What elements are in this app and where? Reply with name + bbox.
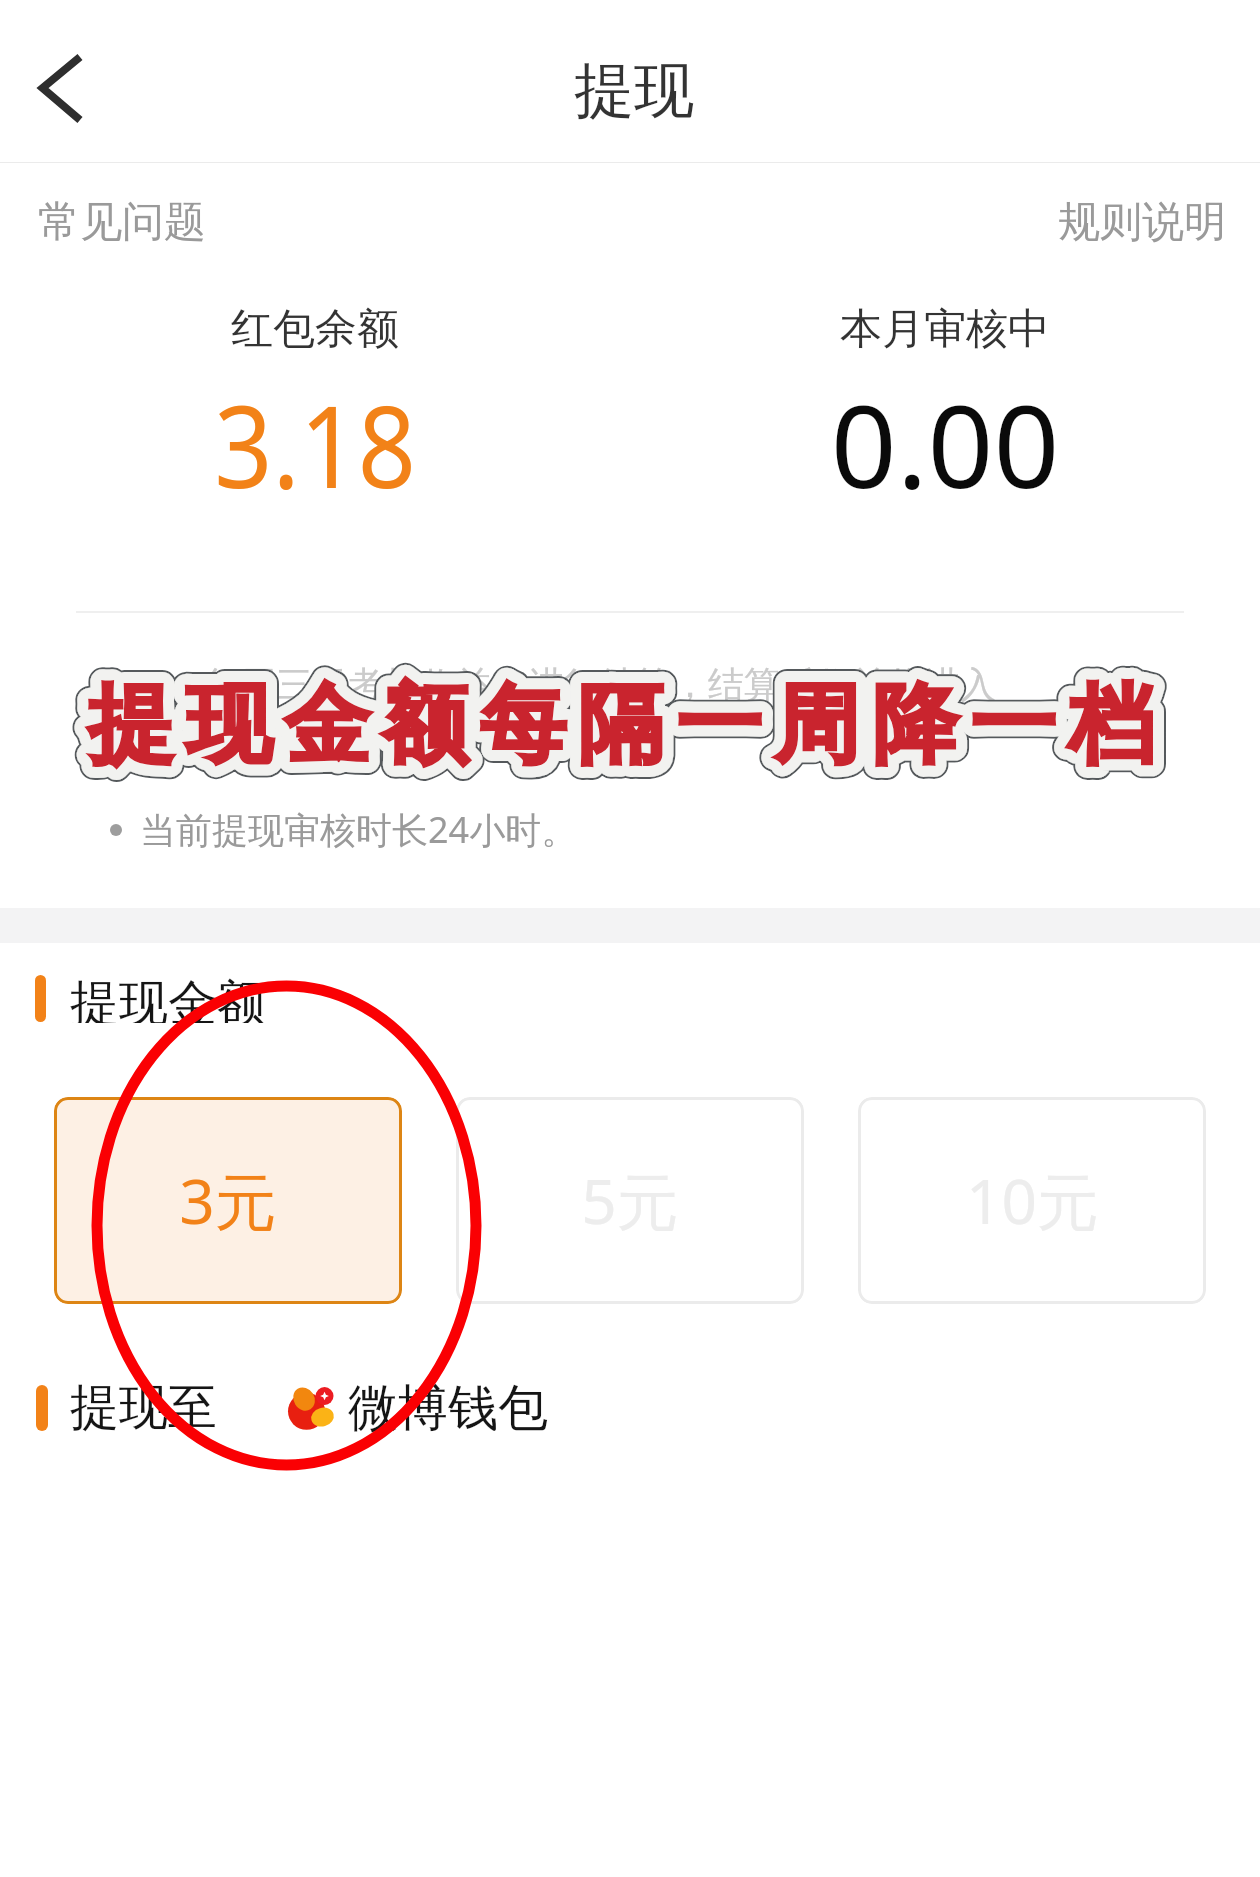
staticText: 提现金额每隔一周降一档 (82, 671, 1160, 779)
staticText: 提现金额每隔一周降一档 (82, 671, 1160, 779)
button[interactable]: 提现至 (0, 1368, 1260, 1448)
staticText: 微博钱包 (348, 1377, 548, 1440)
staticText: 提现金额每隔一周降一档 (82, 671, 1160, 779)
staticText: 0.00 (831, 367, 1060, 521)
button[interactable]: Back (10, 43, 120, 153)
staticText: 5元 (581, 1158, 679, 1243)
staticText: 提现 (574, 53, 694, 129)
staticText: 3元 (179, 1158, 277, 1243)
staticText: 规则说明 (1058, 196, 1226, 246)
button[interactable]: 常见问题 (0, 182, 230, 260)
staticText: 红包余额 (231, 303, 399, 356)
staticText: 提现金额 (70, 973, 266, 1023)
button[interactable]: 5元 (456, 1097, 804, 1304)
staticText: 当前提现审核时长24小时。 (140, 805, 578, 854)
button[interactable]: 本月审核中 (630, 295, 1260, 521)
button[interactable]: 红包余额 (0, 295, 630, 521)
button[interactable]: 3元 (54, 1097, 402, 1304)
staticText: 提现至 (70, 1377, 217, 1439)
staticText: 本月审核中 (840, 303, 1050, 356)
staticText: 常见问题 (38, 196, 206, 246)
button[interactable]: 规则说明 (1034, 182, 1260, 260)
staticText: 3.18 (214, 367, 417, 521)
button[interactable]: 10元 (858, 1097, 1206, 1304)
staticText: 10元 (966, 1158, 1099, 1243)
staticText: 每周三天考核收益将进行结算，结算后收益将进入余额。 (190, 662, 1010, 761)
